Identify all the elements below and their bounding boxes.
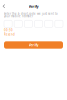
staticText: Verify — [28, 4, 38, 9]
staticText: 00:30 — [4, 28, 13, 32]
button[interactable]: Resend — [4, 33, 63, 36]
staticText: Verify — [28, 43, 38, 47]
button[interactable]: Verify — [4, 41, 63, 49]
staticText: your mobile number — [4, 14, 33, 18]
button[interactable]: 00:30 — [4, 28, 63, 32]
staticText: Resend — [4, 33, 15, 36]
staticText: Enter the 6 digit code we just sent to — [4, 12, 58, 15]
button[interactable]: Back — [0, 2, 7, 10]
